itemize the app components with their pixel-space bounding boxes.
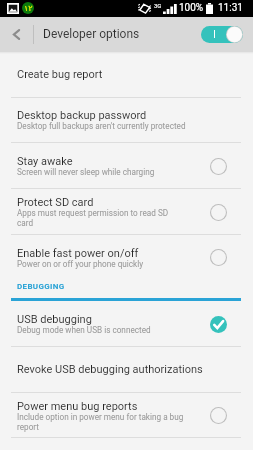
staticText: Include option in power menu for taking … (17, 412, 184, 432)
staticText: Enable fast power on/off (17, 247, 139, 260)
button[interactable]: Create bug report (0, 51, 253, 97)
staticText: Developer options (43, 27, 140, 41)
staticText: 11:31 (218, 2, 243, 14)
staticText: 100% (179, 2, 204, 14)
staticText: 3G (154, 2, 162, 9)
button[interactable]: Protect SD card (0, 189, 253, 234)
staticText: Power on or off your phone quickly (17, 259, 144, 269)
button[interactable]: Revoke USB debugging authorizations (0, 347, 253, 392)
button[interactable]: Stay awake (0, 143, 253, 188)
staticText: Desktop backup password (17, 109, 147, 122)
staticText: USB debugging (17, 313, 92, 326)
staticText: DEBUGGING (17, 282, 65, 291)
staticText: Screen will never sleep while charging (17, 167, 155, 177)
staticText: Protect SD card (17, 196, 94, 209)
staticText: Debug mode when USB is connected (17, 325, 151, 335)
staticText: Apps must request permission to read SD … (17, 208, 169, 228)
staticText: Power menu bug reports (17, 400, 138, 413)
staticText: Stay awake (17, 155, 73, 168)
staticText: Desktop full backups aren't currently pr… (17, 121, 186, 131)
staticText: Create bug report (17, 68, 103, 81)
button[interactable]: Power menu bug reports (0, 393, 253, 437)
staticText: Revoke USB debugging authorizations (17, 363, 203, 376)
button[interactable]: USB debugging (0, 301, 253, 346)
button[interactable]: Desktop backup password (0, 97, 253, 142)
button[interactable]: Enable fast power on/off (0, 235, 253, 279)
button[interactable]: Developer options on (201, 25, 243, 43)
staticText: ١٢ (24, 4, 33, 13)
button[interactable]: Back (0, 17, 33, 51)
